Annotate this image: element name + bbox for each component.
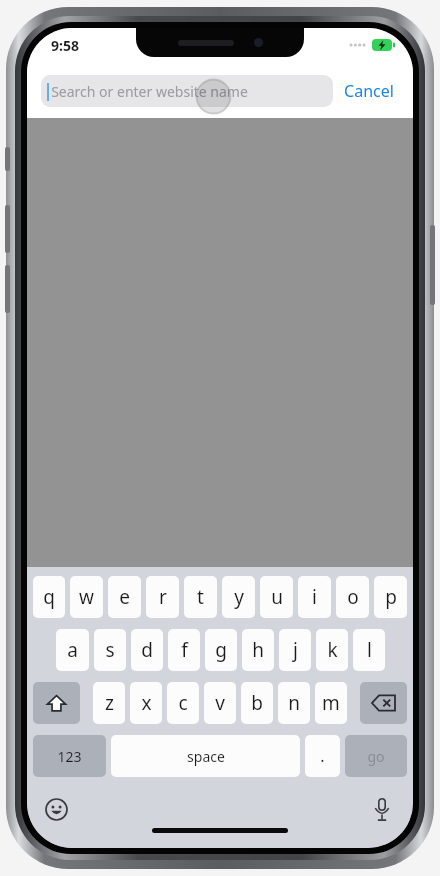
button[interactable]: j: [279, 629, 311, 671]
button[interactable]: Emoji keyboard: [39, 792, 73, 826]
staticText: d: [141, 637, 153, 663]
button[interactable]: k: [316, 629, 348, 671]
staticText: o: [347, 584, 359, 610]
button[interactable]: n: [278, 682, 310, 724]
button[interactable]: Search or enter website name: [41, 75, 333, 107]
button[interactable]: g: [205, 629, 237, 671]
staticText: Search or enter website name: [51, 82, 248, 101]
staticText: c: [178, 690, 188, 716]
button[interactable]: h: [242, 629, 274, 671]
button[interactable]: Dictation: [365, 792, 399, 826]
button[interactable]: u: [260, 576, 293, 618]
button[interactable]: m: [315, 682, 347, 724]
button[interactable]: Mute switch: [5, 147, 10, 171]
button[interactable]: Power: [430, 225, 435, 305]
staticText: a: [67, 637, 78, 663]
button[interactable]: 123: [33, 735, 106, 777]
staticText: .: [320, 745, 325, 767]
button[interactable]: Backspace: [360, 682, 407, 724]
button[interactable]: Volume up: [5, 205, 10, 253]
button[interactable]: z: [93, 682, 125, 724]
button[interactable]: q: [33, 576, 65, 618]
staticText: h: [252, 637, 264, 663]
button[interactable]: x: [130, 682, 162, 724]
staticText: u: [271, 584, 283, 610]
button[interactable]: y: [222, 576, 255, 618]
button[interactable]: Volume down: [5, 265, 10, 313]
button[interactable]: Cancel: [333, 73, 405, 109]
staticText: z: [105, 690, 114, 716]
button[interactable]: Shift: [33, 682, 80, 724]
staticText: q: [43, 584, 55, 610]
button[interactable]: w: [70, 576, 103, 618]
staticText: 9:58: [51, 36, 79, 55]
staticText: go: [367, 747, 385, 766]
staticText: x: [141, 690, 152, 716]
button[interactable]: c: [167, 682, 199, 724]
button[interactable]: d: [131, 629, 163, 671]
button[interactable]: space: [111, 735, 300, 777]
staticText: g: [215, 637, 227, 663]
staticText: w: [79, 584, 94, 610]
button[interactable]: v: [204, 682, 236, 724]
button[interactable]: i: [298, 576, 331, 618]
staticText: y: [234, 584, 244, 610]
staticText: v: [215, 690, 225, 716]
button[interactable]: l: [353, 629, 385, 671]
staticText: n: [288, 690, 300, 716]
staticText: m: [322, 690, 340, 716]
staticText: t: [197, 584, 204, 610]
staticText: e: [119, 584, 130, 610]
staticText: b: [251, 690, 263, 716]
button[interactable]: a: [56, 629, 89, 671]
button[interactable]: go: [345, 735, 407, 777]
staticText: 123: [57, 747, 82, 766]
button[interactable]: t: [184, 576, 217, 618]
button[interactable]: .: [305, 735, 340, 777]
button[interactable]: b: [241, 682, 273, 724]
staticText: space: [187, 747, 225, 766]
button[interactable]: e: [108, 576, 141, 618]
staticText: r: [159, 584, 167, 610]
staticText: j: [293, 637, 298, 663]
button[interactable]: o: [336, 576, 369, 618]
staticText: k: [327, 637, 338, 663]
staticText: l: [367, 637, 372, 663]
button[interactable]: f: [168, 629, 200, 671]
button[interactable]: s: [94, 629, 126, 671]
staticText: f: [181, 637, 188, 663]
staticText: p: [385, 584, 397, 610]
staticText: i: [312, 584, 317, 610]
button[interactable]: r: [146, 576, 179, 618]
staticText: s: [105, 637, 115, 663]
button[interactable]: p: [374, 576, 407, 618]
staticText: Cancel: [344, 80, 394, 102]
